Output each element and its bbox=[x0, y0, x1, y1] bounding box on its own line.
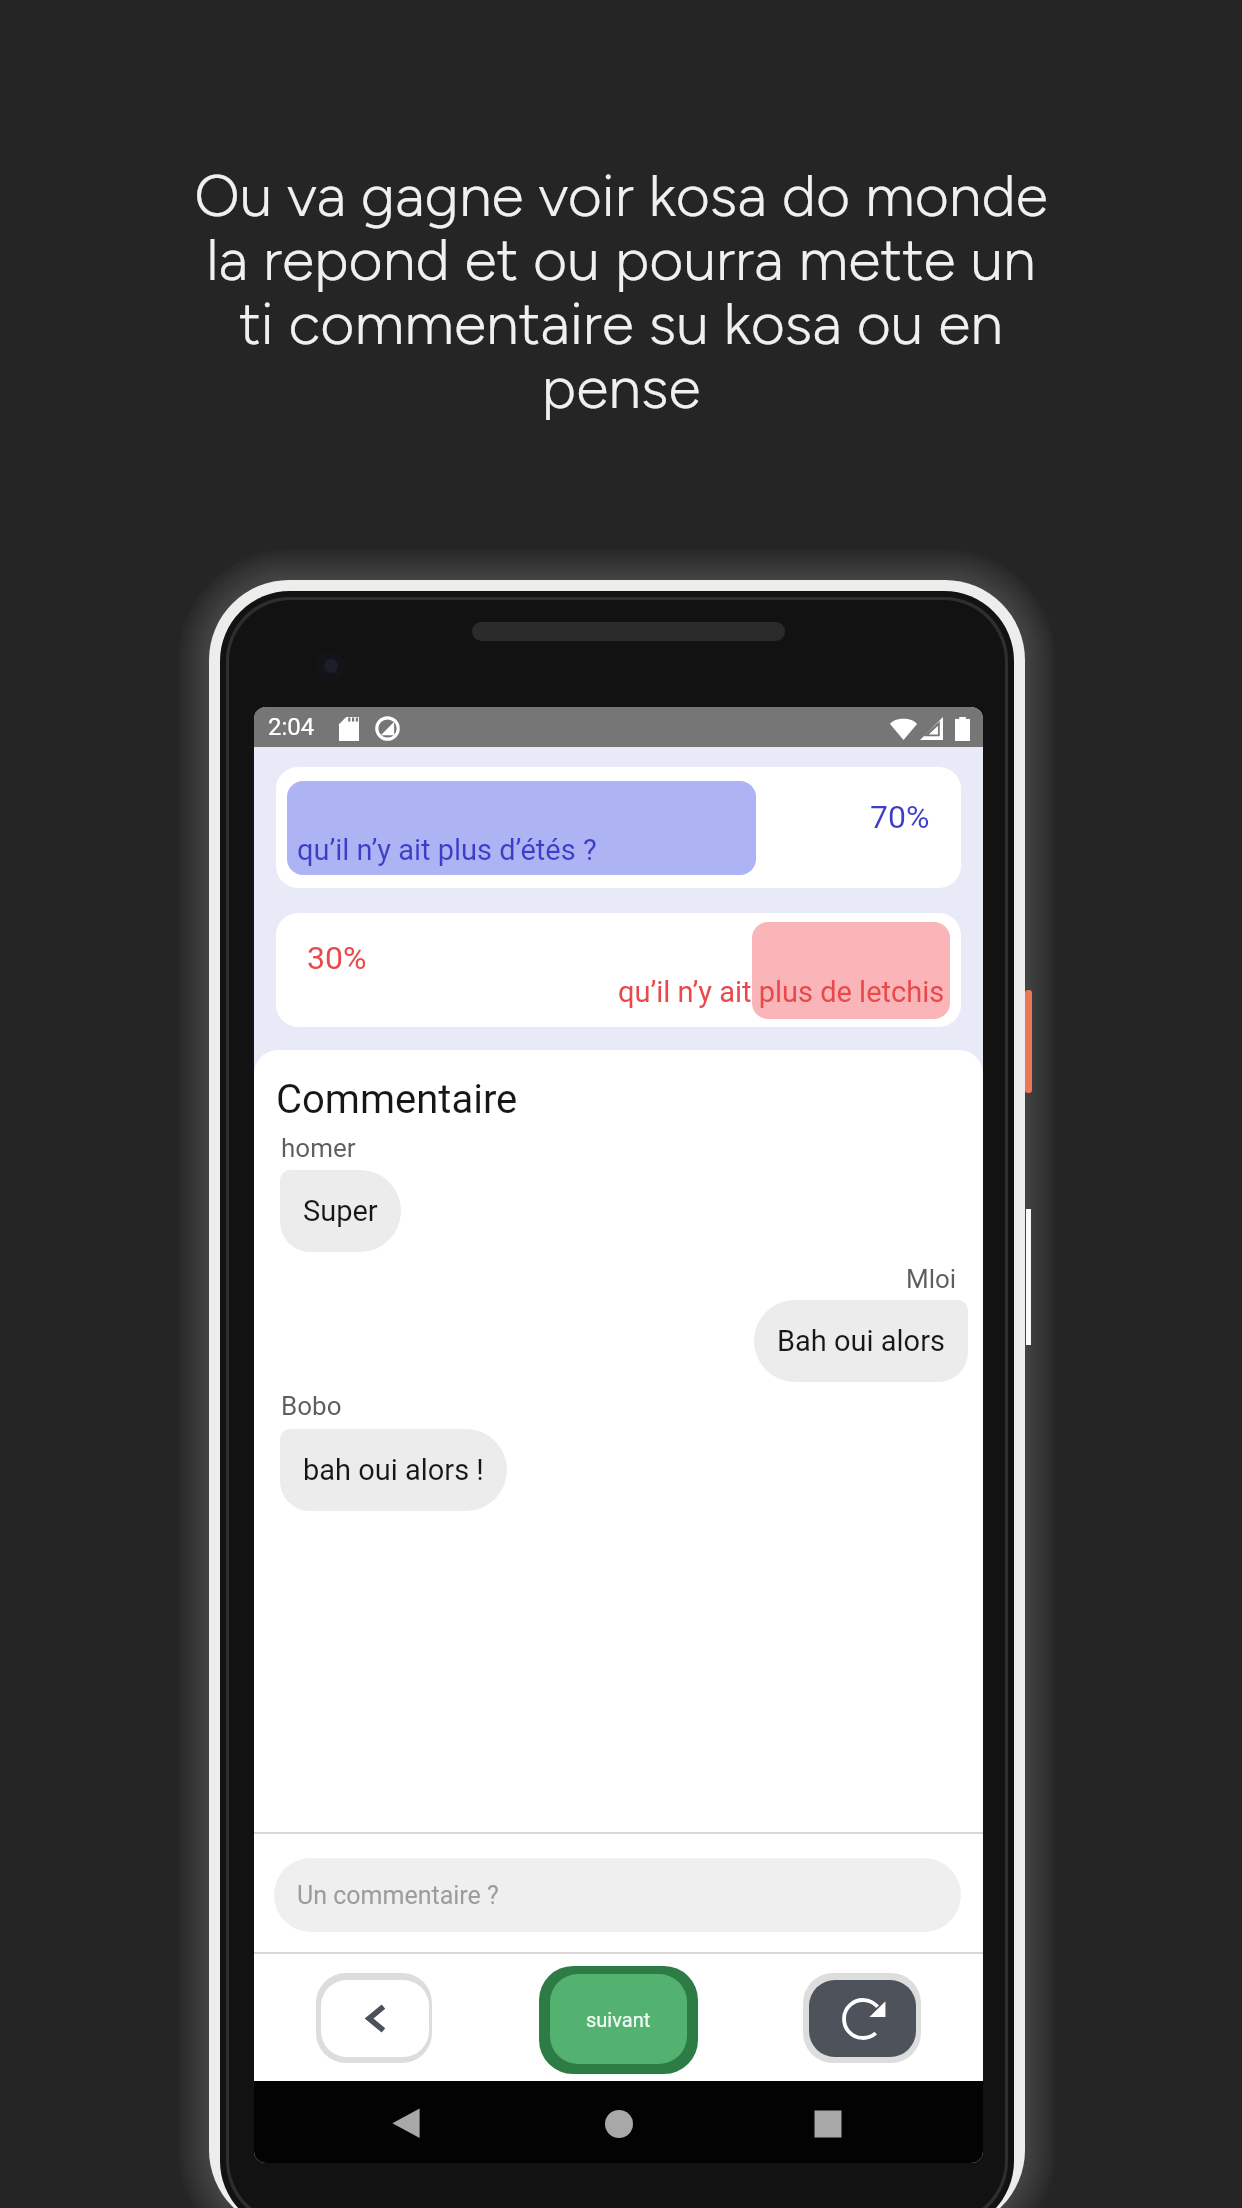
button[interactable]: qu’il n’y ait plus d’étés ? bbox=[276, 767, 961, 888]
staticText: Super bbox=[303, 1194, 378, 1228]
button[interactable]: Home bbox=[597, 2102, 641, 2146]
staticText: homer bbox=[281, 1133, 356, 1163]
button[interactable]: Rafraîchir bbox=[803, 1973, 921, 2063]
button[interactable]: Recents bbox=[806, 2102, 850, 2146]
staticText: 2:04 bbox=[268, 713, 315, 741]
button[interactable]: 30% bbox=[276, 913, 961, 1027]
staticText: Mloi bbox=[906, 1264, 957, 1294]
staticText: Commentaire bbox=[276, 1076, 518, 1123]
staticText: Bobo bbox=[281, 1391, 342, 1421]
staticText: qu’il n’y ait plus d’étés ? bbox=[297, 833, 597, 867]
staticText: bah oui alors ! bbox=[303, 1453, 484, 1487]
button[interactable]: suivant bbox=[539, 1966, 698, 2074]
staticText: Ou va gagne voir kosa do monde la repond… bbox=[190, 160, 1052, 422]
staticText: Bah oui alors bbox=[777, 1324, 945, 1358]
staticText: suivant bbox=[586, 2008, 651, 2031]
button[interactable]: Un commentaire ? bbox=[274, 1858, 961, 1932]
staticText: 30% bbox=[307, 939, 367, 977]
button[interactable]: Bah oui alors bbox=[754, 1300, 968, 1382]
staticText: Un commentaire ? bbox=[297, 1881, 499, 1910]
staticText: qu’il n’y ait plus de letchis bbox=[618, 975, 945, 1009]
staticText: 70% bbox=[870, 798, 930, 836]
button[interactable]: Retour bbox=[316, 1973, 432, 2063]
button[interactable]: Super bbox=[280, 1170, 401, 1252]
button[interactable]: Back bbox=[384, 2101, 428, 2145]
button[interactable]: bah oui alors ! bbox=[280, 1429, 507, 1511]
